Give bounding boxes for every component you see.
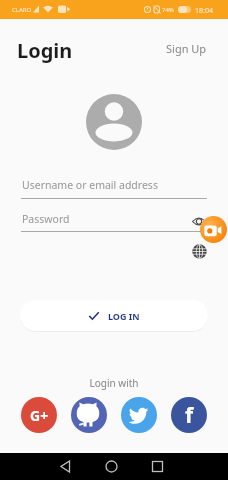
button[interactable]: f [171,397,207,433]
staticText: 74% [162,6,174,14]
button[interactable] [147,456,168,477]
staticText: 18:04 [195,6,213,16]
staticText: Username or email address [22,178,158,192]
staticText: Login with [0,376,228,390]
staticText: G+ [30,406,49,425]
staticText: Login [17,37,73,64]
button[interactable] [101,456,122,477]
button[interactable] [55,456,76,477]
staticText: CLARO [12,6,32,14]
button[interactable]: Password [0,208,228,234]
button[interactable]: G+ [21,397,57,433]
button[interactable]: Username or email address [0,174,228,200]
button[interactable]: Sign Up [160,35,213,62]
button[interactable]: LOG IN [20,300,208,331]
button[interactable] [200,216,227,243]
button[interactable] [121,397,157,433]
staticText: Password [22,212,70,226]
button[interactable] [71,397,107,433]
staticText: f [185,401,194,430]
staticText: Sign Up [166,41,207,56]
staticText: LOG IN [108,310,140,322]
